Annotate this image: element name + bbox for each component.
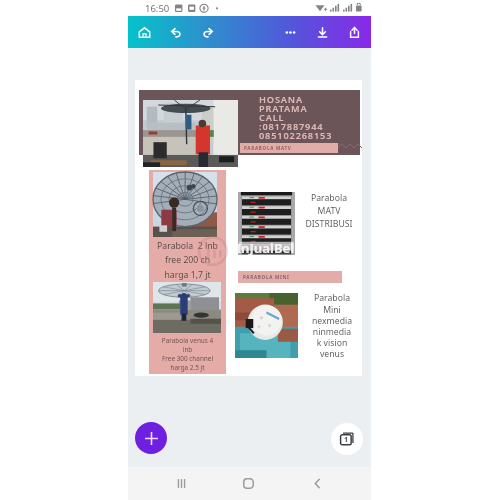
button[interactable]: Undo	[166, 22, 186, 42]
staticText: Parabola 2 lnb free 200 ch harga 1,7 jt	[149, 240, 226, 281]
button[interactable]: Tabs	[331, 423, 363, 455]
staticText: HOSANA PRATAMA CALL :0817887944 08510226…	[259, 93, 333, 142]
staticText: 16:50	[145, 2, 170, 15]
staticText: Parabola venus 4 lnb Free 300 channel ha…	[149, 336, 226, 372]
button[interactable]: More options	[280, 22, 300, 42]
button[interactable]: New tab	[135, 422, 167, 454]
staticText: Parabola Mini nexmedia ninmedia k vision…	[301, 292, 363, 360]
staticText: PARABOLA MATV	[244, 145, 292, 151]
button[interactable]: Share	[344, 22, 364, 42]
staticText: PARABOLA MINI	[243, 274, 290, 280]
staticText: 1	[344, 435, 349, 445]
button[interactable]: Home	[134, 22, 154, 42]
button[interactable]: Download	[312, 22, 332, 42]
staticText: Parabola MATV DISTRIBUSI	[293, 192, 365, 229]
button[interactable]: Redo	[197, 22, 217, 42]
button[interactable]: HOSANA PRATAMA CALL :0817887944 08510226…	[135, 80, 362, 376]
staticText: InJualBel	[236, 239, 295, 257]
button[interactable]: Home	[236, 471, 260, 495]
button[interactable]: Back	[305, 471, 329, 495]
button[interactable]: Recents	[169, 471, 193, 495]
